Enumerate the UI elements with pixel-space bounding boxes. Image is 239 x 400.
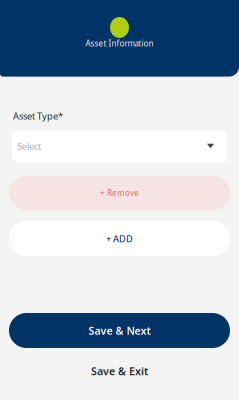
button[interactable]: Select xyxy=(12,130,227,162)
staticText: Select xyxy=(17,140,41,152)
staticText: Asset Type* xyxy=(13,110,63,122)
button[interactable]: + Remove xyxy=(9,176,230,210)
staticText: Save & Next xyxy=(88,323,150,338)
staticText: + ADD xyxy=(106,232,133,245)
button[interactable]: Save & Exit xyxy=(0,359,239,383)
button[interactable]: + ADD xyxy=(9,221,230,256)
button[interactable]: Save & Next xyxy=(9,313,230,348)
staticText: + Remove xyxy=(100,188,139,198)
staticText: Save & Exit xyxy=(91,364,148,378)
staticText: Asset Information xyxy=(85,38,153,49)
